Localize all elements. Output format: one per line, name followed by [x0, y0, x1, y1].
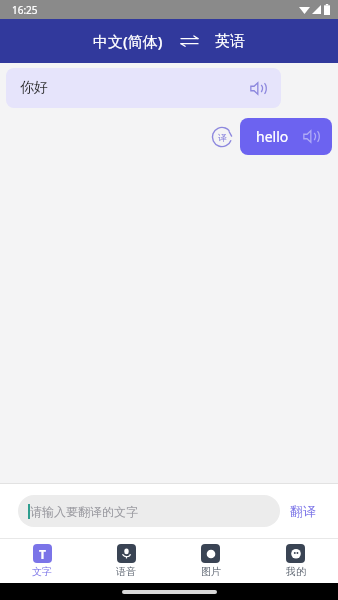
staticText: 语音 — [116, 565, 136, 578]
staticText: 翻译 — [290, 503, 316, 519]
staticText: 英语 — [215, 32, 245, 51]
staticText: 文字 — [32, 565, 52, 578]
button[interactable]: 我的 — [253, 539, 338, 583]
button[interactable]: T — [0, 539, 84, 583]
button[interactable]: Swap languages — [179, 31, 199, 51]
button[interactable]: 翻译 — [280, 495, 326, 527]
staticText: 16:25 — [12, 3, 38, 17]
button[interactable]: 图片 — [168, 539, 253, 583]
staticText: 我的 — [286, 565, 306, 578]
staticText: 中文(简体) — [93, 31, 163, 51]
staticText: 译 — [218, 132, 227, 143]
button[interactable]: 请输入要翻译的文字 — [18, 495, 280, 527]
button[interactable]: 中文(简体) — [89, 27, 167, 55]
button[interactable]: Translate again — [209, 124, 235, 150]
staticText: hello — [256, 127, 289, 146]
staticText: 你好 — [20, 79, 48, 97]
button[interactable]: 语音 — [84, 539, 168, 583]
staticText: T — [39, 546, 46, 562]
button[interactable]: 你好 — [6, 68, 281, 108]
staticText: 图片 — [201, 565, 221, 578]
button[interactable]: 英语 — [211, 28, 249, 55]
button[interactable]: hello — [240, 118, 332, 155]
staticText: 请输入要翻译的文字 — [30, 504, 138, 519]
